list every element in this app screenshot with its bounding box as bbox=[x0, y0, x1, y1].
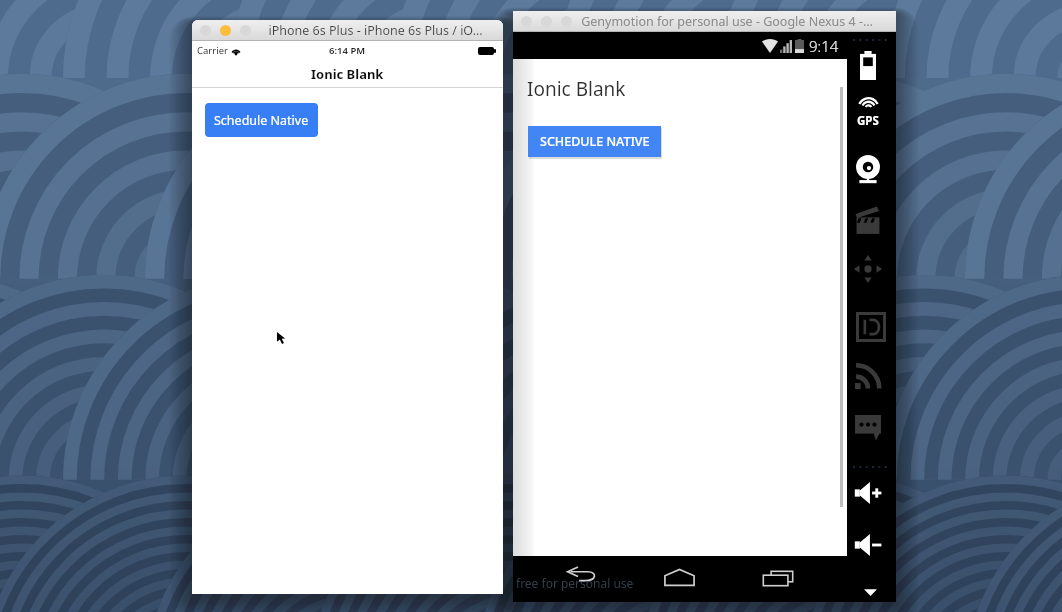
button[interactable]: GPS bbox=[854, 103, 882, 129]
button[interactable]: Recents bbox=[763, 571, 793, 586]
staticText: Ionic Blank bbox=[527, 76, 626, 102]
button[interactable]: Identifiers bbox=[856, 312, 886, 342]
staticText: Genymotion for personal use - Google Nex… bbox=[581, 13, 873, 30]
button[interactable]: Volume down bbox=[853, 532, 889, 558]
button[interactable]: Home bbox=[664, 569, 695, 586]
button[interactable]: Rotate bbox=[854, 254, 882, 284]
button[interactable]: Schedule Native bbox=[205, 103, 318, 137]
button[interactable]: Screen record bbox=[855, 206, 881, 236]
button[interactable]: Back bbox=[567, 567, 596, 581]
staticText: Ionic Blank bbox=[311, 65, 384, 83]
staticText: 9:14 bbox=[809, 36, 839, 56]
staticText: Schedule Native bbox=[214, 112, 309, 129]
staticText: SCHEDULE NATIVE bbox=[540, 133, 650, 150]
button[interactable]: Camera bbox=[855, 154, 881, 186]
staticText: GPS bbox=[857, 113, 879, 129]
button[interactable]: Messages bbox=[855, 412, 881, 442]
staticText: free for personal use bbox=[516, 575, 634, 591]
button[interactable]: Volume up bbox=[853, 480, 889, 506]
staticText: 6:14 PM bbox=[329, 44, 366, 57]
button[interactable]: SCHEDULE NATIVE bbox=[528, 126, 661, 157]
button[interactable]: Network bbox=[855, 362, 882, 389]
staticText: Carrier bbox=[197, 44, 228, 57]
button[interactable]: Battery bbox=[860, 51, 876, 80]
staticText: iPhone 6s Plus - iPhone 6s Plus / iO… bbox=[268, 22, 483, 39]
button[interactable]: More bbox=[864, 588, 877, 597]
